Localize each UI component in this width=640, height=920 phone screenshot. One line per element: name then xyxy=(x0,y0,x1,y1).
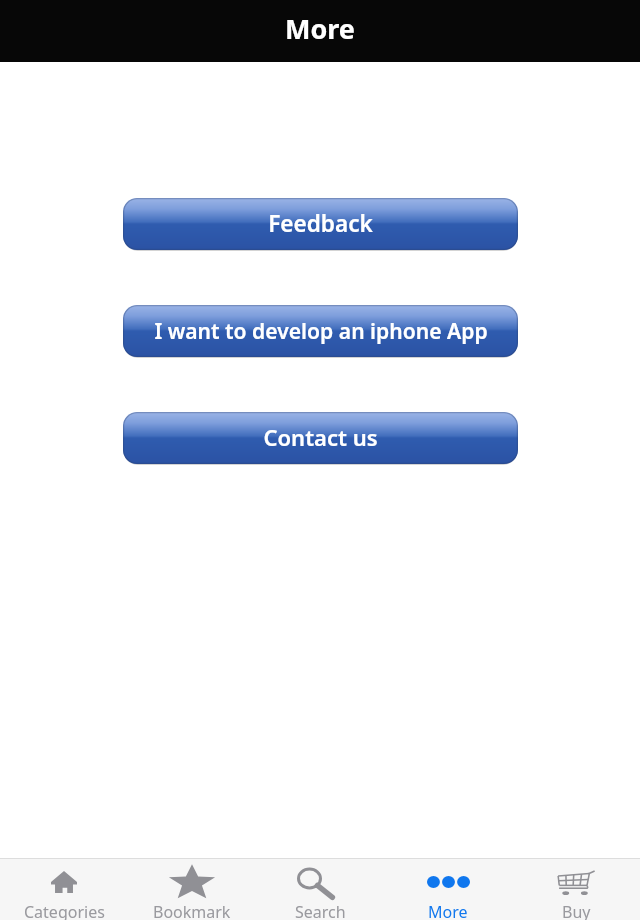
button[interactable]: Categories xyxy=(0,859,128,920)
staticText: Buy xyxy=(562,901,591,920)
staticText: Feedback xyxy=(268,208,373,239)
staticText: Categories xyxy=(24,901,105,920)
button[interactable]: Buy xyxy=(512,859,640,920)
button[interactable]: I want to develop an iphone App xyxy=(123,305,518,357)
button[interactable]: More xyxy=(384,859,512,920)
staticText: Search xyxy=(295,901,346,920)
staticText: More xyxy=(285,10,355,47)
button[interactable]: Search xyxy=(256,859,384,920)
staticText: More xyxy=(428,901,468,920)
button[interactable]: Bookmark xyxy=(128,859,256,920)
staticText: I want to develop an iphone App xyxy=(154,316,488,345)
staticText: Bookmark xyxy=(153,901,231,920)
button[interactable]: Feedback xyxy=(123,198,518,250)
staticText: Contact us xyxy=(263,422,378,452)
button[interactable]: Contact us xyxy=(123,412,518,464)
